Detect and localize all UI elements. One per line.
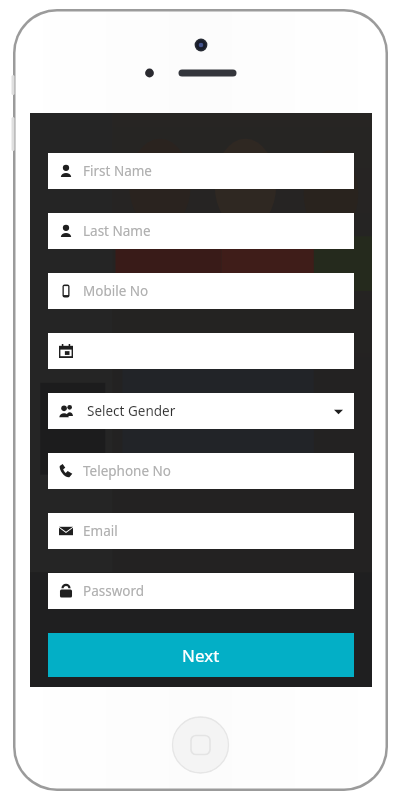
- button[interactable]: Email: [48, 513, 354, 549]
- button[interactable]: Password: [48, 573, 354, 609]
- staticText: First Name: [83, 162, 152, 180]
- staticText: Next: [182, 644, 220, 667]
- button[interactable]: Next: [48, 633, 354, 677]
- button[interactable]: Last Name: [48, 213, 354, 249]
- staticText: Mobile No: [83, 282, 149, 300]
- staticText: Telephone No: [83, 462, 171, 480]
- button[interactable]: Select date: [48, 333, 354, 369]
- staticText: Last Name: [83, 222, 151, 240]
- button[interactable]: Telephone No: [48, 453, 354, 489]
- staticText: Email: [83, 522, 118, 540]
- staticText: Select Gender: [87, 402, 176, 420]
- button[interactable]: Select Gender: [48, 393, 354, 429]
- button[interactable]: Mobile No: [48, 273, 354, 309]
- staticText: Password: [83, 582, 145, 600]
- button[interactable]: First Name: [48, 153, 354, 189]
